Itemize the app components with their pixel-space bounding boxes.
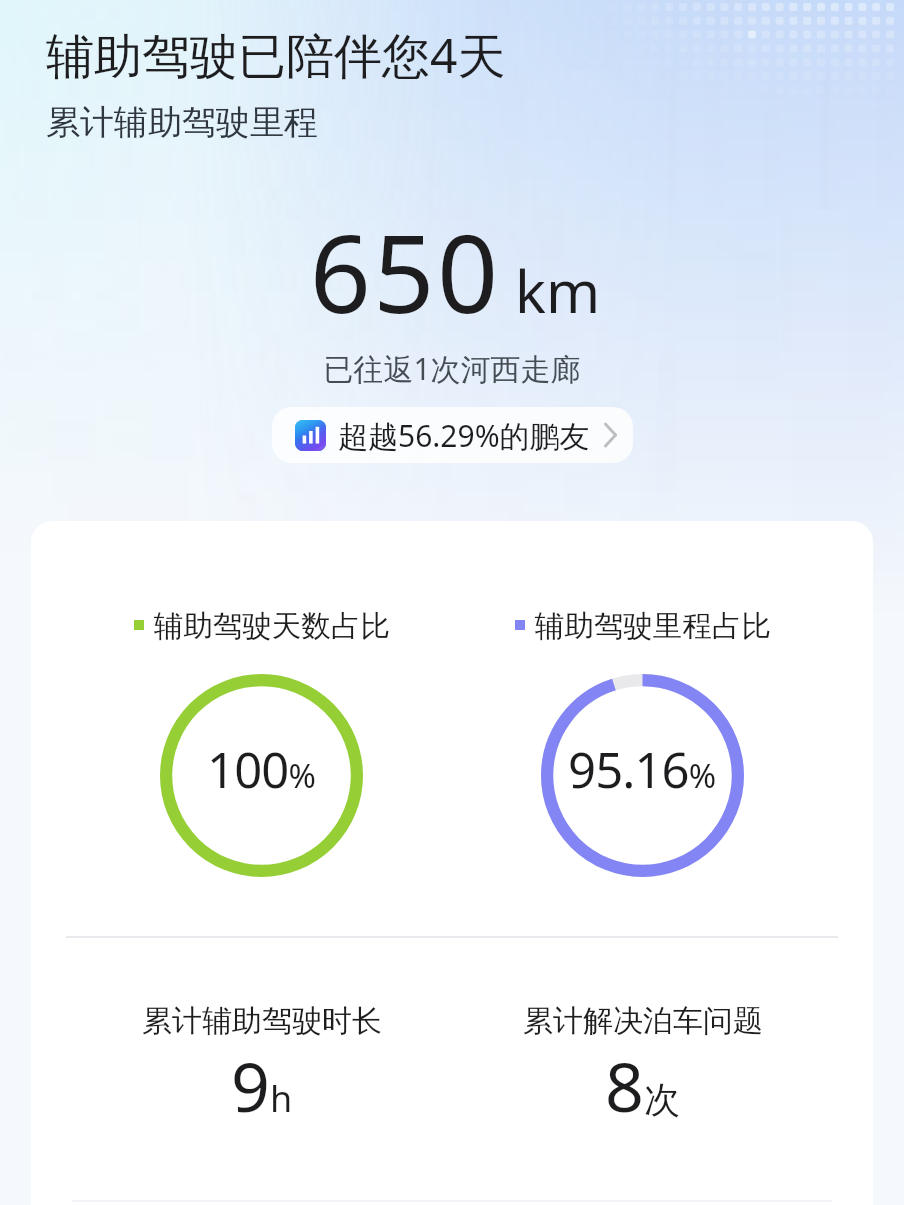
staticText: 辅助驾驶天数占比 (154, 608, 390, 645)
staticText: 辅助驾驶已陪伴您4天 (46, 22, 506, 88)
staticText: 累计辅助驾驶里程 (46, 101, 318, 144)
button[interactable]: 超越56.29%的鹏友 (272, 407, 633, 463)
button[interactable]: 辅助驾驶天数占比 (71, 608, 452, 877)
staticText: 累计解决泊车问题 (523, 1002, 763, 1040)
button[interactable]: 累计解决泊车问题 (452, 1002, 833, 1153)
staticText: 超越56.29%的鹏友 (338, 415, 590, 456)
staticText: 8次 (605, 1039, 680, 1132)
staticText: 650 km (3, 199, 904, 345)
button[interactable]: 累计辅助驾驶时长 (71, 1002, 452, 1153)
staticText: 9h (231, 1039, 293, 1132)
staticText: 已往返1次河西走廊 (0, 348, 904, 389)
staticText: 辅助驾驶里程占比 (535, 608, 771, 645)
button[interactable]: 辅助驾驶里程占比 (452, 608, 833, 877)
staticText: 累计辅助驾驶时长 (142, 1002, 382, 1040)
other: 查看排名 (604, 424, 617, 446)
staticText: 95.16% (568, 736, 717, 803)
staticText: 100% (207, 736, 316, 803)
